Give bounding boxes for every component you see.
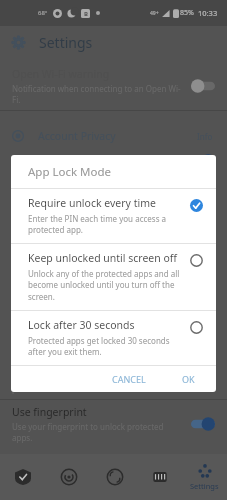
button[interactable]: Selected <box>187 196 205 214</box>
button[interactable]: Toggle <box>191 417 215 431</box>
button[interactable]: Toggle <box>191 368 215 382</box>
staticText: Use fingerprint <box>12 405 87 419</box>
staticText: App Lock Mode <box>28 164 112 180</box>
staticText: Lock after 30 seconds <box>28 318 135 332</box>
staticText: Random Keyboard <box>12 356 104 370</box>
staticText: Enter the PIN each time you access a pro… <box>28 213 181 236</box>
staticText: 85% <box>180 8 194 18</box>
button[interactable]: CANCEL <box>105 369 153 389</box>
other: Settings gear <box>12 36 25 49</box>
staticText: 10:33 <box>198 8 218 18</box>
button[interactable]: Security <box>0 454 46 500</box>
staticText: Unlock any of the protected apps and all… <box>28 268 181 303</box>
button[interactable]: Random Keyboard <box>0 351 227 399</box>
staticText: CANCEL <box>112 373 146 385</box>
staticText: 68° <box>38 9 48 17</box>
staticText: Require unlock every time <box>28 196 156 210</box>
button[interactable]: Lock after 30 seconds <box>11 311 216 365</box>
button[interactable]: OK <box>175 369 202 389</box>
staticText: OK <box>182 373 195 385</box>
staticText: 49+ <box>150 10 159 17</box>
button[interactable]: Battery <box>137 454 182 500</box>
button[interactable]: Cleaner <box>92 454 137 500</box>
staticText: Protected apps get locked 30 seconds aft… <box>28 335 181 358</box>
button[interactable]: Settings <box>182 454 227 500</box>
button[interactable]: Scan <box>46 454 92 500</box>
button[interactable]: Not selected <box>187 318 205 336</box>
button[interactable]: Require unlock every time <box>11 189 216 243</box>
button[interactable]: Info <box>195 129 215 144</box>
staticText: Settings <box>190 481 219 491</box>
staticText: Account Privacy <box>38 129 116 143</box>
staticText: Privacy status notification <box>12 154 139 168</box>
staticText: Use your fingerprint to unlock protected… <box>12 421 183 443</box>
staticText: B <box>84 10 88 18</box>
button[interactable]: Not selected <box>187 251 205 269</box>
button[interactable]: Toggle <box>191 154 215 168</box>
staticText: Prevent PIN reading by randomizing numbe… <box>12 372 183 394</box>
button[interactable]: Open Wi-Fi warning <box>0 62 227 110</box>
button[interactable]: Privacy status notification <box>0 149 227 173</box>
button[interactable]: Toggle <box>191 79 215 93</box>
staticText: Keep unlocked until screen off <box>28 251 178 265</box>
staticText: Notification when connecting to an Open … <box>12 83 183 105</box>
button[interactable]: Use fingerprint <box>0 400 227 448</box>
button[interactable]: Keep unlocked until screen off <box>11 244 216 310</box>
staticText: Settings <box>39 33 93 52</box>
staticText: Info <box>197 131 213 142</box>
